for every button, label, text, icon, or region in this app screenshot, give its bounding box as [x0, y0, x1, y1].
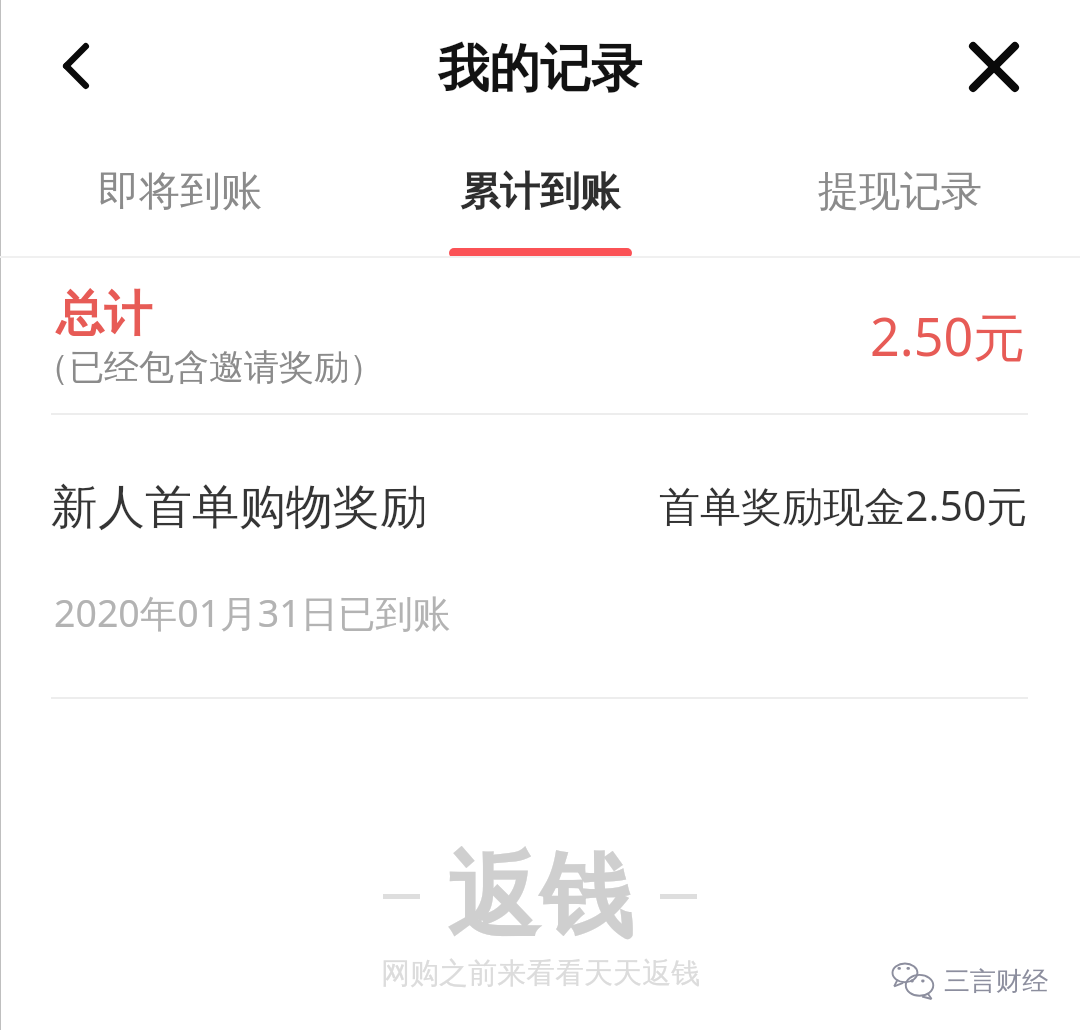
staticText: 新人首单购物奖励 — [51, 478, 427, 537]
button[interactable]: Close — [950, 23, 1038, 111]
button[interactable]: 累计到账 — [360, 132, 720, 257]
staticText: 2020年01月31日已到账 — [54, 587, 451, 638]
staticText: 即将到账 — [98, 166, 262, 218]
button[interactable]: 新人首单购物奖励 — [0, 415, 1080, 698]
staticText: 2.50元 — [870, 300, 1026, 371]
staticText: 网购之前来看看天天返钱 — [381, 955, 700, 992]
staticText: 首单奖励现金2.50元 — [659, 477, 1028, 533]
staticText: 总计 — [56, 284, 152, 344]
staticText: 提现记录 — [818, 166, 982, 218]
staticText: （已经包含邀请奖励） — [34, 345, 384, 389]
button[interactable]: 提现记录 — [720, 132, 1080, 257]
button[interactable]: Back — [32, 22, 120, 110]
button[interactable]: 即将到账 — [0, 132, 360, 257]
staticText: 我的记录 — [438, 37, 642, 101]
staticText: 返钱 — [447, 838, 633, 955]
staticText: 累计到账 — [460, 166, 620, 216]
staticText: 三言财经 — [944, 965, 1048, 998]
